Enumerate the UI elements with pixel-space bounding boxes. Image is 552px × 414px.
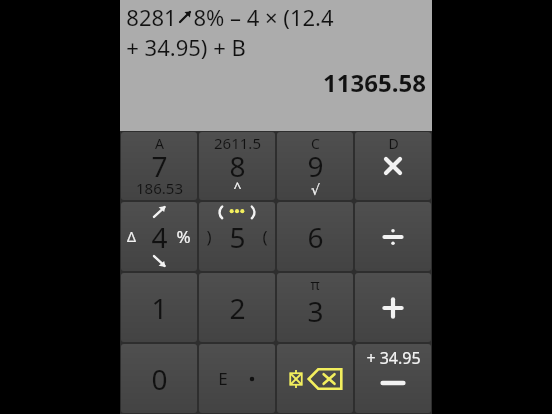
staticText: 2611.5 — [214, 133, 261, 153]
staticText: ) — [206, 225, 212, 248]
staticText: 4 — [151, 218, 168, 256]
button[interactable]: 7 — [121, 132, 197, 200]
staticText: D — [388, 134, 399, 153]
staticText: ( — [262, 225, 268, 248]
staticText: 11365.58 — [323, 66, 426, 99]
button[interactable]: Divide — [355, 202, 431, 271]
staticText: π — [310, 275, 320, 294]
staticText: 1 — [151, 289, 168, 327]
button[interactable]: 3 — [277, 273, 353, 342]
staticText: Δ — [127, 227, 136, 246]
staticText: √ — [311, 182, 320, 198]
staticText: 0 — [151, 360, 168, 398]
button[interactable]: 9 — [277, 132, 353, 200]
staticText: 7 — [151, 147, 168, 185]
staticText: E — [218, 367, 228, 390]
staticText: 5 — [229, 218, 246, 256]
button[interactable]: Plus — [355, 273, 431, 342]
staticText: 186.53 — [136, 178, 183, 198]
staticText: A — [155, 134, 164, 153]
staticText: 3 — [307, 292, 324, 330]
button[interactable]: 1 — [121, 273, 197, 342]
staticText: 8 — [229, 147, 246, 185]
staticText: 2 — [229, 289, 246, 327]
button[interactable]: 4 — [121, 202, 197, 271]
button[interactable]: Multiply — [355, 132, 431, 200]
button[interactable]: 2 — [199, 273, 275, 342]
button[interactable]: 0 — [121, 344, 197, 413]
button[interactable]: Minus — [355, 344, 431, 413]
staticText: + 34.95) + B — [126, 32, 246, 62]
staticText: 9 — [307, 147, 324, 185]
staticText: + 34.95 — [366, 347, 421, 369]
staticText: 8281 — [126, 2, 177, 32]
staticText: C — [311, 134, 320, 153]
staticText: 8% – 4 × (12.4 — [193, 2, 334, 32]
button[interactable]: 8 — [199, 132, 275, 200]
button[interactable]: 6 — [277, 202, 353, 271]
staticText: ^ — [233, 178, 242, 197]
staticText: % — [176, 225, 191, 248]
button[interactable]: 5 — [199, 202, 275, 271]
button[interactable]: Delete — [277, 344, 353, 413]
staticText: 6 — [307, 218, 324, 256]
button[interactable]: E — [199, 344, 275, 413]
